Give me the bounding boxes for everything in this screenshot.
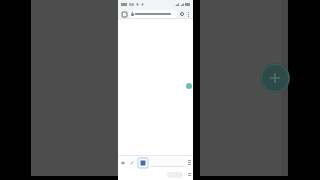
- button[interactable]: More options: [185, 11, 191, 17]
- button[interactable]: Search or type URL: [129, 10, 177, 18]
- button[interactable]: Menu: [187, 173, 191, 177]
- button[interactable]: Selected tool: [138, 158, 148, 168]
- button[interactable]: Switch tabs: [120, 10, 128, 18]
- button[interactable]: Bold: [120, 160, 126, 166]
- button[interactable]: Add: [260, 63, 290, 93]
- button[interactable]: Options: [187, 160, 192, 165]
- button[interactable]: Submit: [167, 172, 183, 178]
- button[interactable]: Chat: [186, 83, 192, 89]
- button[interactable]: Reload: [178, 10, 185, 17]
- button[interactable]: Text field: [150, 159, 186, 167]
- button[interactable]: Italic: [129, 160, 135, 166]
